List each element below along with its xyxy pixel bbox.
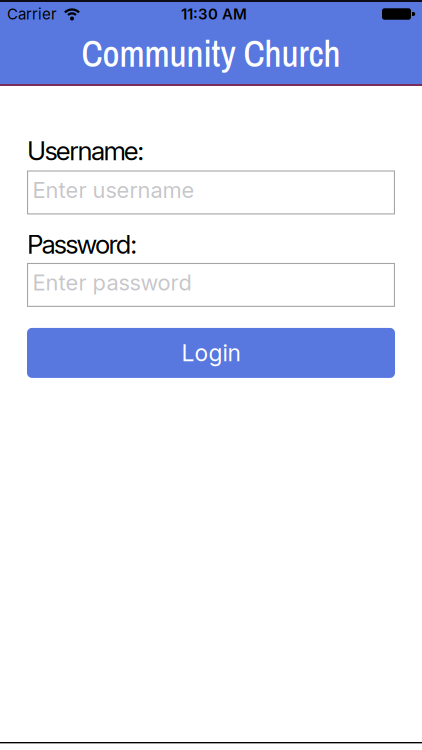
button[interactable]: Login xyxy=(27,328,395,378)
staticText: 11:30 AM xyxy=(181,5,247,23)
staticText: Enter username xyxy=(32,177,194,203)
staticText: Carrier xyxy=(7,5,57,23)
staticText: Password: xyxy=(27,228,137,260)
staticText: Login xyxy=(181,339,240,367)
staticText: Enter password xyxy=(32,269,191,296)
button[interactable]: Enter username xyxy=(27,170,395,214)
button[interactable]: Enter password xyxy=(27,263,395,307)
staticText: Community Church xyxy=(81,29,340,78)
staticText: Username: xyxy=(27,135,144,166)
